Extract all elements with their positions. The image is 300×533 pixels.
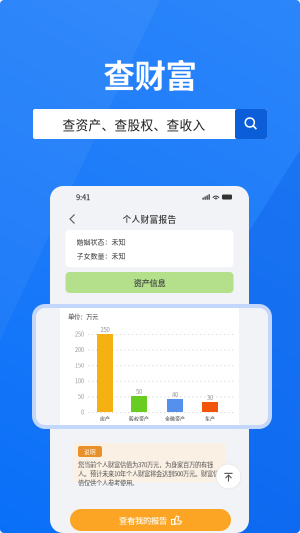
button[interactable]: 置顶 [216,464,241,489]
staticText: 200 [75,346,84,353]
staticText: 查财富 [103,51,196,97]
staticText: 子女数量：未知 [76,250,125,260]
staticText: 250 [75,330,84,338]
staticText: 40 [172,390,178,399]
staticText: 金融资产 [165,414,185,421]
staticText: 100 [75,377,84,385]
staticText: 9:41 [76,192,90,202]
staticText: 股权资产 [129,414,149,421]
button[interactable]: 查看我的报告 [70,509,231,531]
staticText: 婚姻状态：未知 [76,236,125,246]
staticText: 您当前个人财富估值为370万元，为身家百万的有钱人。预计未来10年个人财富将会达… [78,460,219,487]
staticText: 0 [81,408,84,416]
staticText: 查资产、查股权、查收入 [62,115,205,133]
staticText: 单位：万元 [68,312,98,321]
staticText: 个人财富报告 [122,213,176,225]
staticText: 资产信息 [133,276,165,289]
staticText: 150 [75,361,84,369]
button[interactable]: 查资产、查股权、查收入 [33,109,267,139]
staticText: 查看我的报告 [119,514,167,526]
button[interactable]: 返回 [69,213,76,224]
staticText: 房产 [100,414,110,421]
staticText: 50 [136,387,142,396]
staticText: 50 [78,392,84,400]
staticText: 30 [207,393,213,402]
staticText: 250 [100,325,109,334]
staticText: 车产 [205,414,215,421]
staticText: 说明 [84,447,96,455]
